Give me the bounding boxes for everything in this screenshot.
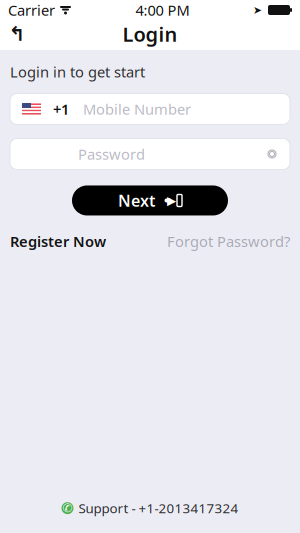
staticText: Mobile Number — [83, 99, 191, 119]
staticText: +1 — [53, 99, 69, 119]
staticText: Login in to get start — [10, 62, 145, 81]
staticText: Login — [122, 21, 177, 47]
button[interactable]: Next — [72, 185, 228, 215]
staticText: 4:00 PM — [135, 0, 189, 20]
staticText: Next — [118, 190, 155, 211]
button[interactable]: Password — [10, 138, 290, 169]
staticText: ↰ — [8, 23, 25, 45]
staticText: ▶ — [167, 194, 176, 207]
staticText: Support - +1-2013417324 — [78, 499, 238, 517]
button[interactable]: Back — [0, 20, 34, 48]
staticText: Carrier — [8, 0, 55, 20]
staticText: Register Now — [10, 231, 106, 251]
staticText: ➤ — [253, 4, 262, 16]
staticText: Forgot Password? — [167, 231, 290, 251]
button[interactable]: Register Now — [10, 231, 106, 251]
button[interactable]: ✆ — [61, 499, 238, 517]
staticText: Password — [78, 144, 145, 164]
staticText: ✆ — [62, 501, 72, 515]
button[interactable]: Forgot Password? — [167, 231, 290, 251]
button[interactable]: +1 — [10, 93, 290, 124]
